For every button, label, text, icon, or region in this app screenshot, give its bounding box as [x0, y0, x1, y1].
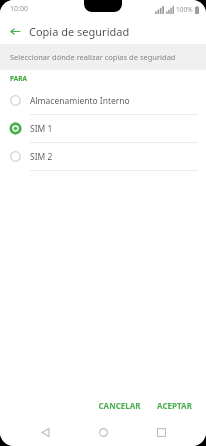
button[interactable]: SIM 2 — [0, 143, 206, 170]
staticText: Seleccionar dónde realizar copias de seg… — [10, 52, 176, 62]
staticText: Copia de seguridad — [29, 24, 130, 39]
staticText: CANCELAR — [98, 400, 141, 411]
button[interactable]: SIM 1 — [0, 115, 206, 142]
button[interactable]: Back — [4, 20, 26, 42]
button[interactable]: Recent apps — [148, 419, 174, 445]
staticText: 100% — [176, 5, 193, 14]
button[interactable]: Back — [32, 419, 58, 445]
staticText: 10:00 — [10, 4, 28, 14]
button[interactable]: Home — [90, 419, 116, 445]
staticText: SIM 2 — [30, 151, 53, 163]
staticText: PARA — [10, 74, 27, 83]
staticText: Almacenamiento Interno — [30, 95, 130, 107]
button[interactable]: ACEPTAR — [151, 396, 198, 415]
staticText: ACEPTAR — [157, 400, 192, 411]
staticText: SIM 1 — [30, 123, 53, 135]
button[interactable]: Almacenamiento Interno — [0, 87, 206, 114]
button[interactable]: CANCELAR — [92, 396, 147, 415]
